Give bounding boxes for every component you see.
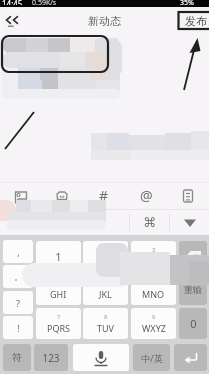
staticText: 3 bbox=[152, 246, 156, 254]
button[interactable]: 发布 bbox=[185, 14, 207, 28]
button[interactable]: 0 bbox=[179, 308, 207, 339]
staticText: 中/英 bbox=[141, 352, 163, 364]
staticText: 14:45 bbox=[2, 0, 23, 5]
button[interactable]: Mention bbox=[125, 182, 167, 209]
staticText: 7 bbox=[57, 313, 61, 321]
staticText: TUV bbox=[97, 322, 114, 334]
staticText: 符 bbox=[12, 351, 22, 364]
button[interactable]: 。 bbox=[3, 265, 33, 288]
button[interactable]: 5 JKL bbox=[83, 274, 128, 305]
staticText: 0 bbox=[190, 316, 197, 331]
staticText: PQRS bbox=[47, 322, 71, 334]
button[interactable]: ? bbox=[3, 291, 33, 314]
staticText: # bbox=[99, 186, 109, 205]
staticText: 0.59K/s bbox=[32, 0, 57, 5]
staticText: 重输 bbox=[184, 284, 202, 295]
button[interactable]: 3 DEF bbox=[131, 241, 176, 272]
button[interactable]: Back bbox=[1, 10, 23, 32]
button[interactable]: 7 PQRS bbox=[36, 308, 81, 339]
staticText: GHI bbox=[50, 288, 67, 300]
button[interactable]: 重输 bbox=[179, 274, 207, 305]
staticText: 新动态 bbox=[88, 14, 121, 28]
staticText: ? bbox=[16, 297, 20, 309]
button[interactable]: 中/英 bbox=[133, 344, 170, 371]
button[interactable]: Keyboard settings bbox=[130, 209, 169, 235]
button[interactable]: Topic bbox=[83, 182, 125, 209]
staticText: 。 bbox=[14, 271, 23, 282]
staticText: 9 bbox=[152, 313, 156, 321]
button[interactable]: List bbox=[167, 182, 209, 209]
button[interactable]: 2 ABC bbox=[83, 241, 128, 272]
button[interactable]: Enter bbox=[174, 344, 207, 371]
button[interactable]: ! bbox=[3, 316, 33, 339]
button[interactable]: 8 TUV bbox=[83, 308, 128, 339]
button[interactable]: Emoji bbox=[41, 182, 83, 209]
button[interactable]: 6 MNO bbox=[131, 274, 176, 305]
button[interactable]: , bbox=[3, 240, 33, 263]
staticText: 8 bbox=[104, 313, 108, 321]
staticText: WXYZ bbox=[142, 322, 166, 334]
button[interactable]: Backspace bbox=[179, 241, 207, 272]
staticText: ⌘ bbox=[143, 215, 156, 230]
button[interactable]: 符 bbox=[3, 344, 31, 371]
staticText: MNO bbox=[142, 288, 165, 300]
staticText: 发布 bbox=[185, 14, 207, 28]
button[interactable]: Voice input bbox=[73, 344, 129, 371]
button[interactable]: 9 WXYZ bbox=[131, 308, 176, 339]
staticText: ! bbox=[17, 322, 20, 334]
button[interactable]: 1 bbox=[36, 241, 81, 272]
button[interactable]: Photo bbox=[0, 182, 41, 209]
staticText: , bbox=[17, 246, 20, 258]
staticText: 1 bbox=[55, 249, 62, 264]
button[interactable]: 123 bbox=[34, 344, 68, 371]
staticText: 35% bbox=[180, 0, 194, 5]
button[interactable]: Hide keyboard bbox=[170, 209, 209, 235]
staticText: 6 bbox=[152, 279, 156, 287]
staticText: JKL bbox=[99, 288, 112, 300]
staticText: 123 bbox=[42, 351, 60, 365]
button[interactable]: 4 GHI bbox=[36, 274, 81, 305]
staticText: @ bbox=[140, 186, 153, 205]
